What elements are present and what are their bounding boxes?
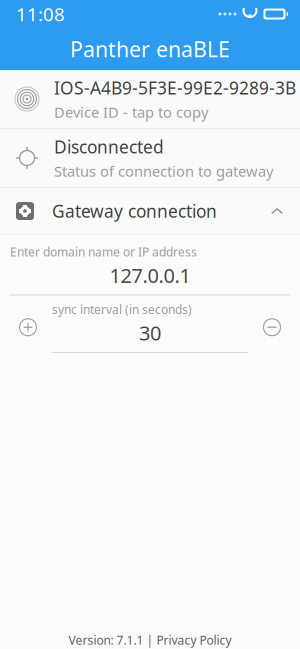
button[interactable]: Panther enaBLE (0, 28, 300, 70)
staticText: Status of connection to gateway (54, 161, 273, 181)
staticText: 30 (139, 319, 161, 346)
staticText: Enter domain name or IP address (10, 244, 197, 260)
button[interactable]: Decrease sync interval (252, 307, 292, 347)
staticText: 11:08 (16, 2, 65, 26)
staticText: Gateway connection (52, 199, 217, 222)
button[interactable]: Disconnected (0, 129, 300, 187)
button[interactable]: Gateway connection (0, 188, 300, 234)
staticText: 127.0.0.1 (109, 262, 190, 288)
staticText: Panther enaBLE (70, 35, 230, 63)
staticText: Disconnected (54, 135, 164, 158)
staticText: sync interval (in seconds) (52, 301, 192, 317)
staticText: Device ID - tap to copy (54, 102, 208, 122)
staticText: Version: 7.1.1 | Privacy Policy (68, 632, 231, 648)
button[interactable]: Increase sync interval (8, 307, 48, 347)
button[interactable]: IOS-A4B9-5F3E-99E2-9289-3B (0, 70, 300, 128)
button[interactable]: Version: 7.1.1 | Privacy Policy (0, 632, 300, 648)
staticText: IOS-A4B9-5F3E-99E2-9289-3B (54, 76, 296, 99)
